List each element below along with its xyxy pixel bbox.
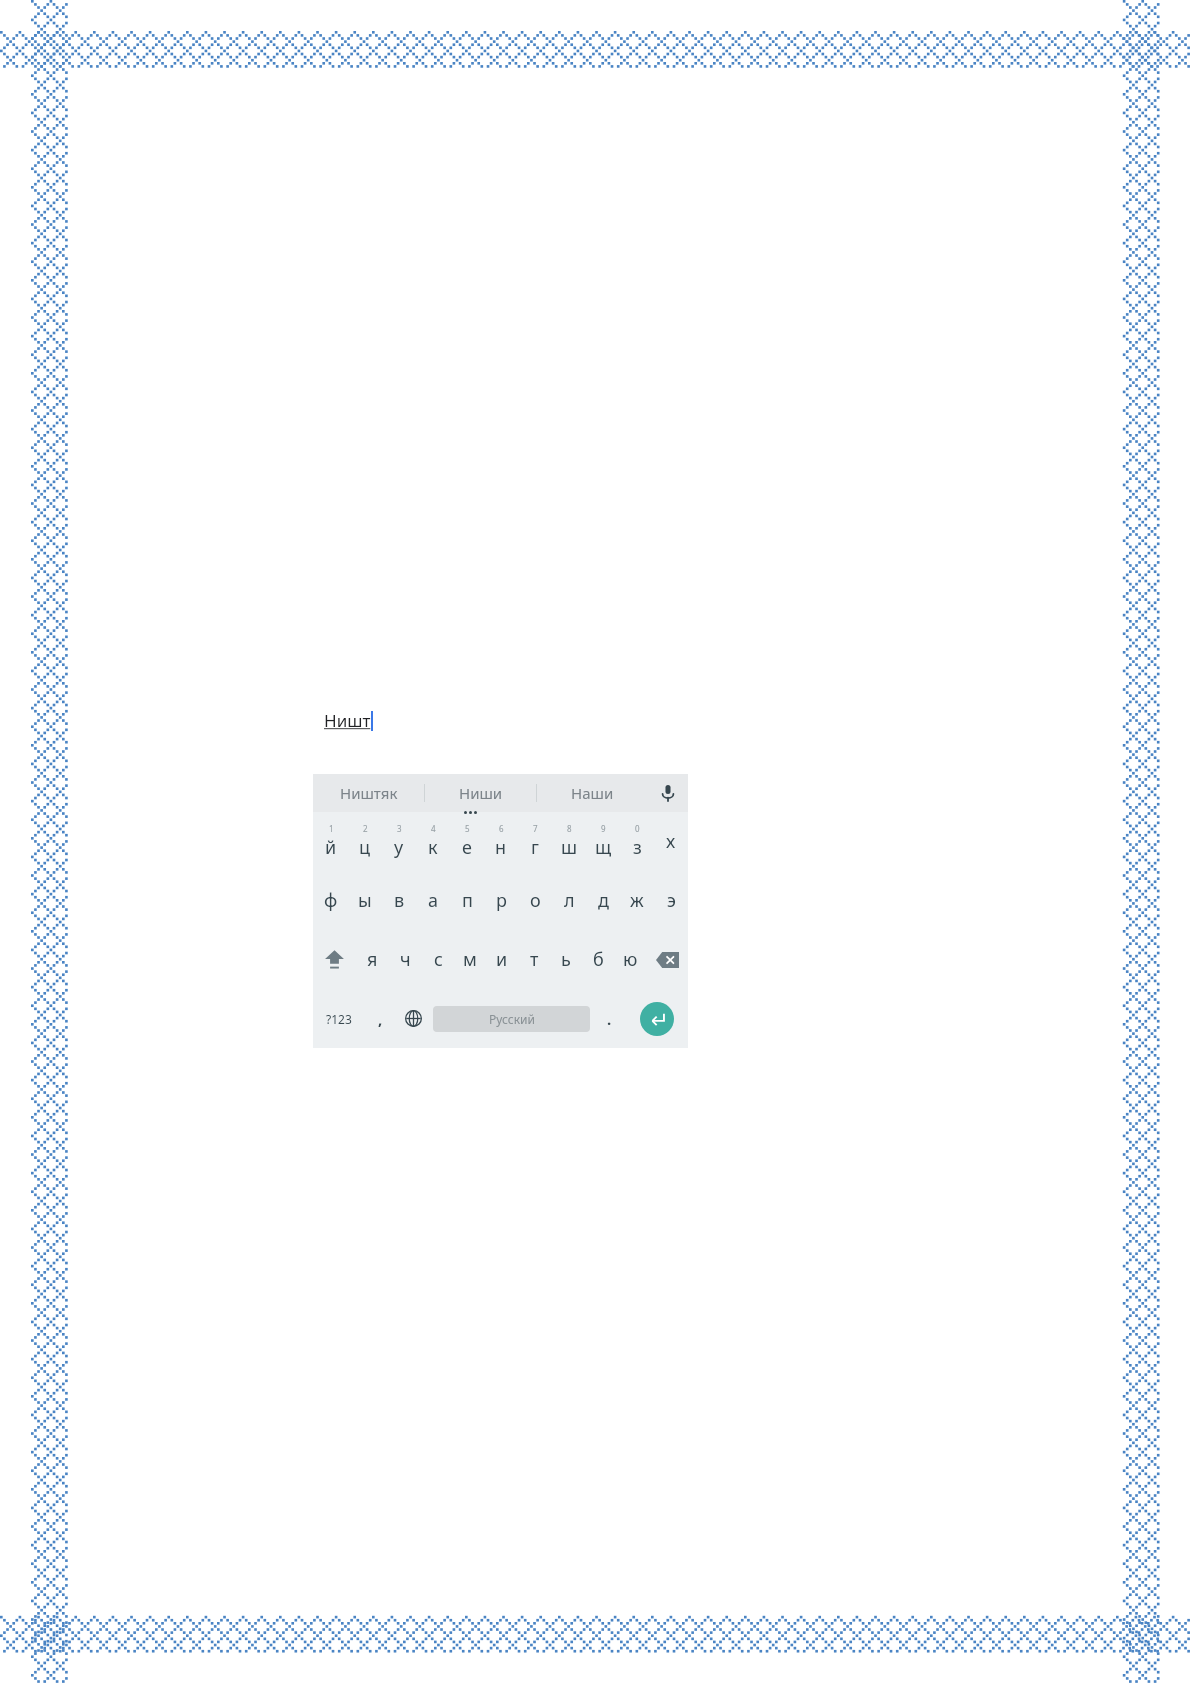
button[interactable]: Enter	[626, 989, 688, 1048]
button[interactable]: р	[484, 871, 518, 930]
button[interactable]: ж	[620, 871, 654, 930]
staticText: 1	[329, 823, 334, 834]
button[interactable]: а	[416, 871, 450, 930]
button[interactable]: л	[552, 871, 586, 930]
button[interactable]: х	[654, 812, 688, 871]
button[interactable]: Backspace	[646, 930, 688, 989]
button[interactable]: 5	[450, 812, 484, 871]
staticText: 8	[567, 823, 572, 834]
staticText: 5	[465, 823, 470, 834]
button[interactable]: 6	[484, 812, 518, 871]
staticText: ,	[378, 1009, 383, 1029]
staticText: Ништяк	[340, 783, 398, 803]
button[interactable]: т	[518, 930, 550, 989]
button[interactable]: .	[593, 989, 626, 1048]
staticText: ф	[324, 888, 338, 913]
staticText: т	[530, 947, 539, 972]
staticText: х	[666, 829, 676, 854]
staticText: ч	[400, 947, 411, 972]
staticText: 0	[635, 823, 640, 834]
button[interactable]: Voice input	[648, 774, 688, 812]
staticText: и	[496, 947, 508, 972]
staticText: й	[325, 835, 337, 860]
staticText: в	[394, 888, 405, 913]
button[interactable]: ю	[614, 930, 646, 989]
button[interactable]: э	[654, 871, 688, 930]
staticText: Ништ	[324, 709, 371, 732]
staticText: е	[462, 835, 472, 860]
button[interactable]: 3	[382, 812, 416, 871]
staticText: б	[593, 947, 604, 972]
button[interactable]: Наши	[537, 774, 648, 812]
staticText: ь	[561, 947, 571, 972]
staticText: я	[367, 947, 378, 972]
button[interactable]: 7	[518, 812, 552, 871]
button[interactable]: 8	[552, 812, 586, 871]
staticText: 3	[397, 823, 402, 834]
staticText: о	[530, 888, 541, 913]
staticText: ?123	[326, 1011, 352, 1027]
staticText: ю	[623, 947, 638, 972]
staticText: п	[462, 888, 473, 913]
button[interactable]: ч	[389, 930, 422, 989]
staticText: д	[598, 888, 609, 913]
button[interactable]: я	[356, 930, 389, 989]
button[interactable]: 9	[586, 812, 620, 871]
staticText: .	[607, 1009, 612, 1029]
button[interactable]: 2	[348, 812, 382, 871]
staticText: 6	[499, 823, 504, 834]
button[interactable]: 0	[620, 812, 654, 871]
staticText: г	[531, 835, 539, 860]
button[interactable]: Ниши	[425, 774, 536, 812]
button[interactable]: в	[382, 871, 416, 930]
button[interactable]: 4	[416, 812, 450, 871]
button[interactable]: Shift	[313, 930, 356, 989]
staticText: а	[428, 888, 439, 913]
staticText: 4	[431, 823, 436, 834]
button[interactable]: 1	[313, 812, 348, 871]
button[interactable]: ы	[348, 871, 382, 930]
button[interactable]: Ништяк	[313, 774, 424, 812]
staticText: Наши	[571, 783, 614, 803]
button[interactable]: ?123	[313, 989, 364, 1048]
staticText: м	[463, 947, 477, 972]
staticText: э	[667, 888, 676, 913]
staticText: к	[428, 835, 438, 860]
staticText: ы	[358, 888, 372, 913]
button[interactable]: п	[450, 871, 484, 930]
staticText: ж	[630, 888, 644, 913]
button[interactable]: Change language	[397, 989, 430, 1048]
button[interactable]: д	[586, 871, 620, 930]
staticText: 9	[601, 823, 606, 834]
staticText: н	[495, 835, 507, 860]
button[interactable]: ь	[550, 930, 582, 989]
button[interactable]: и	[486, 930, 518, 989]
staticText: ц	[359, 835, 371, 860]
staticText: л	[564, 888, 575, 913]
staticText: Русский	[489, 1011, 535, 1027]
staticText: у	[394, 835, 404, 860]
button[interactable]: м	[454, 930, 486, 989]
staticText: з	[633, 835, 642, 860]
button[interactable]: б	[582, 930, 614, 989]
button[interactable]: о	[518, 871, 552, 930]
staticText: Ниши	[459, 783, 503, 803]
staticText: с	[434, 947, 443, 972]
button[interactable]: ф	[313, 871, 348, 930]
staticText: 2	[363, 823, 368, 834]
staticText: ш	[561, 835, 578, 860]
staticText: щ	[595, 835, 612, 860]
staticText: 7	[533, 823, 538, 834]
button[interactable]: ,	[364, 989, 397, 1048]
button[interactable]: с	[422, 930, 454, 989]
button[interactable]: Русский	[433, 1006, 590, 1032]
staticText: р	[496, 888, 507, 913]
